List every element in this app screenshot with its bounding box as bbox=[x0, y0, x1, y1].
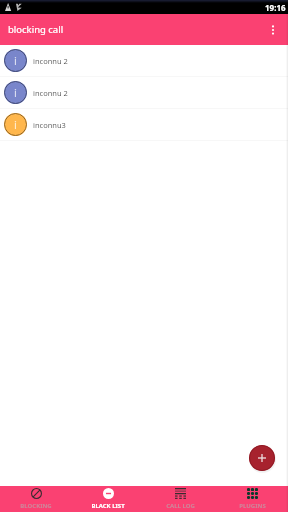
button[interactable]: PLUGINS bbox=[216, 486, 288, 512]
staticText: PLUGINS bbox=[239, 502, 266, 510]
staticText: i bbox=[14, 53, 17, 69]
staticText: inconnu3 bbox=[33, 120, 66, 130]
button[interactable]: i bbox=[0, 45, 288, 76]
staticText: i bbox=[14, 117, 17, 133]
staticText: 19:16 bbox=[265, 2, 286, 13]
staticText: BLOCKING bbox=[20, 502, 52, 510]
button[interactable]: Add bbox=[249, 445, 275, 471]
staticText: CALL LOG bbox=[166, 502, 195, 510]
button[interactable]: CALL LOG bbox=[144, 486, 216, 512]
button[interactable]: BLACK LIST bbox=[72, 486, 144, 512]
button[interactable]: BLOCKING bbox=[0, 486, 72, 512]
staticText: inconnu 2 bbox=[33, 56, 68, 66]
button[interactable]: i bbox=[0, 109, 288, 140]
staticText: blocking call bbox=[8, 23, 64, 36]
button[interactable]: More options bbox=[257, 14, 288, 45]
button[interactable]: i bbox=[0, 77, 288, 108]
staticText: inconnu 2 bbox=[33, 88, 68, 98]
staticText: BLACK LIST bbox=[91, 502, 125, 510]
staticText: i bbox=[14, 85, 17, 101]
